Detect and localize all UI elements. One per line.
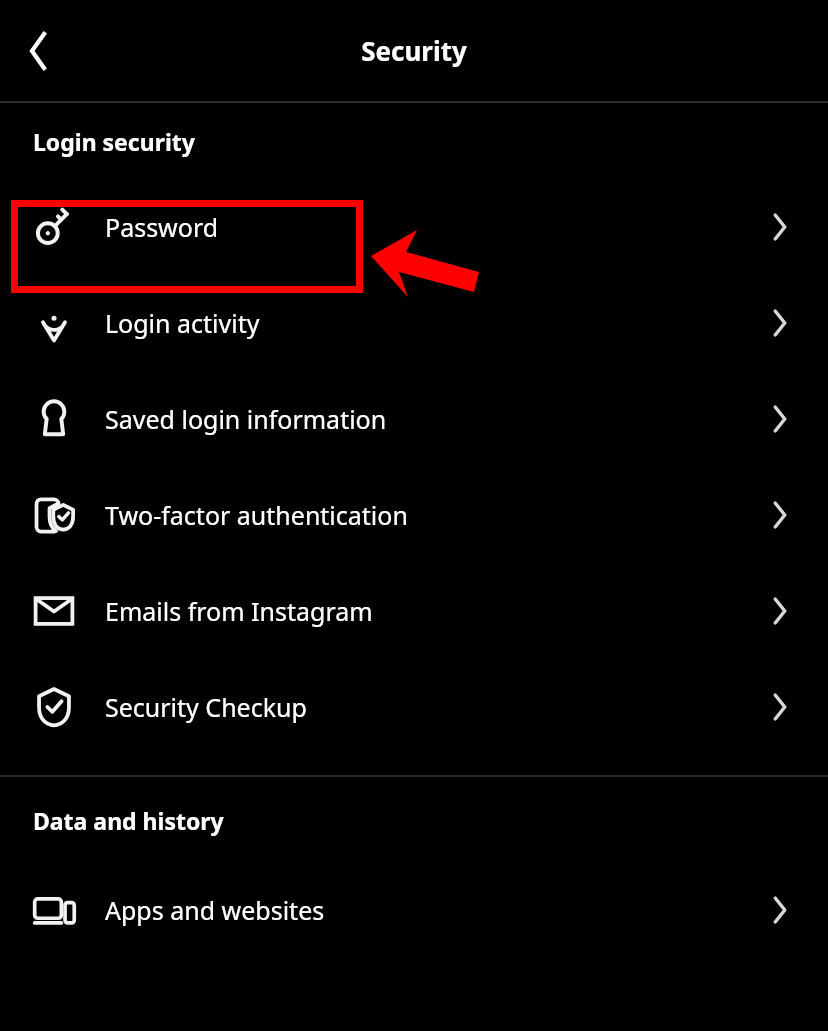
button[interactable]: Two-factor authentication: [0, 467, 828, 563]
button[interactable]: Back: [10, 23, 66, 79]
button[interactable]: Login activity: [0, 275, 828, 371]
staticText: Password: [105, 210, 219, 244]
button[interactable]: Apps and websites: [0, 862, 828, 958]
button[interactable]: Saved login information: [0, 371, 828, 467]
staticText: Saved login information: [105, 402, 387, 436]
staticText: Data and history: [33, 805, 224, 836]
staticText: Security Checkup: [105, 690, 307, 724]
staticText: Emails from Instagram: [105, 594, 373, 628]
staticText: Login activity: [105, 306, 260, 340]
staticText: Security: [361, 33, 467, 68]
staticText: Apps and websites: [105, 893, 325, 927]
staticText: Login security: [33, 126, 195, 157]
staticText: Two-factor authentication: [105, 498, 408, 532]
button[interactable]: Emails from Instagram: [0, 563, 828, 659]
button[interactable]: Security Checkup: [0, 659, 828, 755]
button[interactable]: Password: [0, 179, 828, 275]
